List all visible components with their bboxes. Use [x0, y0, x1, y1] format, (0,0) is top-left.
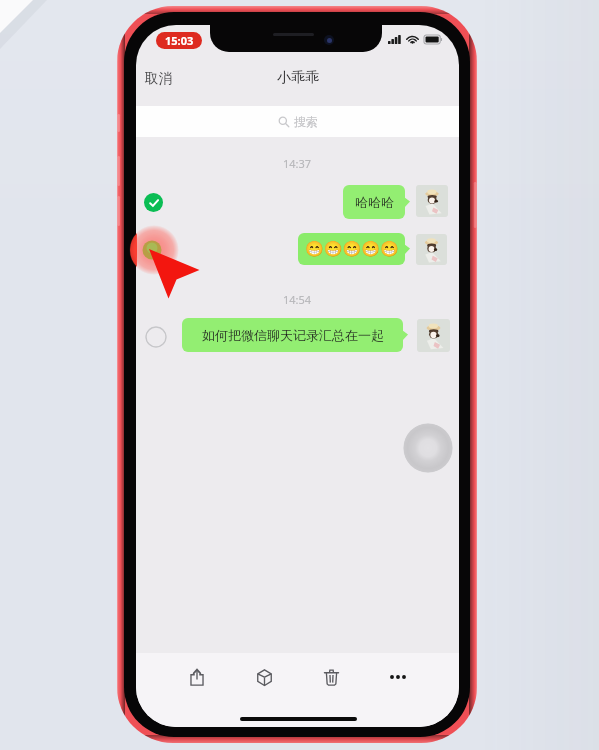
- button[interactable]: 如何把微信聊天记录汇总在一起: [182, 318, 403, 352]
- button[interactable]: More: [375, 654, 421, 700]
- staticText: 哈哈哈: [355, 194, 394, 210]
- button[interactable]: 取消: [145, 70, 172, 87]
- button[interactable]: Delete: [308, 654, 354, 700]
- staticText: 如何把微信聊天记录汇总在一起: [202, 327, 384, 343]
- staticText: 15:03: [165, 33, 194, 48]
- button[interactable]: Avatar: [417, 319, 450, 352]
- button[interactable]: Selected: [144, 193, 163, 212]
- button[interactable]: Avatar: [416, 185, 448, 217]
- button[interactable]: Favorites: [241, 654, 287, 700]
- button[interactable]: AssistiveTouch: [403, 423, 453, 473]
- button[interactable]: Share: [174, 654, 220, 700]
- staticText: 小乖乖: [277, 69, 319, 87]
- button[interactable]: 搜索: [136, 106, 459, 137]
- staticText: 😁😁😁😁😁: [305, 240, 399, 258]
- staticText: 14:54: [283, 292, 312, 307]
- button[interactable]: Avatar: [416, 234, 447, 265]
- staticText: 搜索: [294, 114, 318, 129]
- button[interactable]: 哈哈哈: [343, 185, 405, 219]
- staticText: 14:37: [283, 156, 312, 171]
- button[interactable]: Not selected: [145, 326, 167, 348]
- button[interactable]: 😁😁😁😁😁: [298, 233, 405, 265]
